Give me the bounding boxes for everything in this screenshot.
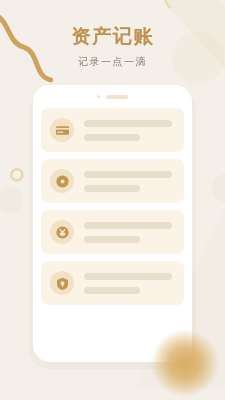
other: Coin [50,169,74,193]
button[interactable]: Savings [41,261,184,305]
other: Bank card [50,118,74,142]
staticText: 记录一点一滴 [0,55,225,68]
staticText: 资产记账 [0,25,225,49]
other: Yuan [50,220,74,244]
button[interactable]: Coin [41,159,184,203]
button[interactable]: Yuan [41,210,184,254]
other: Savings [50,271,74,295]
button[interactable]: Bank card [41,108,184,152]
